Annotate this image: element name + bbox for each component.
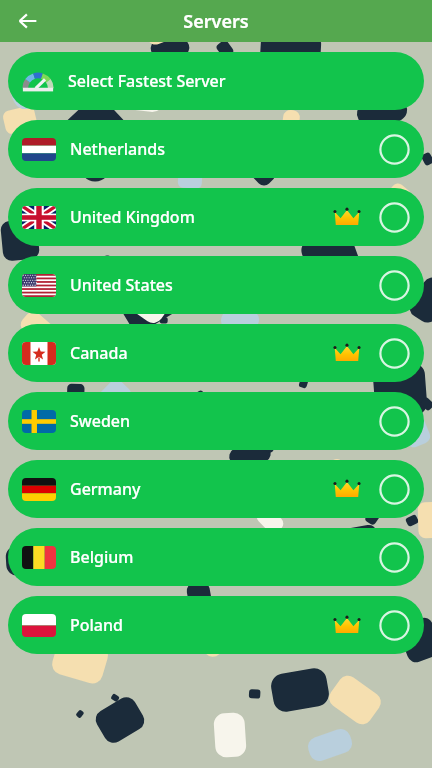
button[interactable]: United Kingdom [8,188,424,246]
button[interactable]: Netherlands [8,120,424,178]
staticText: Germany [70,478,141,500]
staticText: Belgium [70,546,134,568]
button[interactable]: Back [8,1,48,41]
button[interactable]: Germany [8,460,424,518]
button[interactable]: Sweden [8,392,424,450]
staticText: United Kingdom [70,206,195,228]
button[interactable]: Select Fastest Server [8,52,424,110]
button[interactable]: Poland [8,596,424,654]
button[interactable]: United States [8,256,424,314]
staticText: Poland [70,614,123,636]
staticText: Servers [183,9,249,34]
button[interactable]: Belgium [8,528,424,586]
staticText: United States [70,274,173,296]
staticText: Netherlands [70,138,165,160]
staticText: Sweden [70,410,131,432]
staticText: Select Fastest Server [68,70,226,92]
staticText: Canada [70,342,128,364]
button[interactable]: Canada [8,324,424,382]
